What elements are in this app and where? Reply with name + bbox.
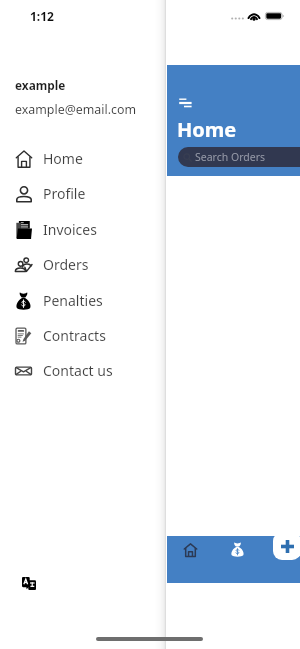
button[interactable]: Contact us <box>0 353 166 388</box>
staticText: Profile <box>43 184 86 203</box>
button[interactable]: Orders <box>0 247 166 282</box>
staticText: example@email.com <box>15 101 137 118</box>
button[interactable]: Penalties <box>0 283 166 318</box>
button[interactable]: Home <box>184 543 197 557</box>
staticText: Home <box>43 149 83 168</box>
button[interactable]: Invoices <box>0 212 166 247</box>
button[interactable]: Open navigation menu <box>178 97 193 109</box>
button[interactable]: Penalties <box>231 542 244 557</box>
button[interactable]: Profile <box>0 176 166 211</box>
staticText: Contracts <box>43 326 106 345</box>
staticText: Invoices <box>43 220 97 239</box>
staticText: Home <box>177 116 237 143</box>
staticText: example <box>15 77 66 93</box>
button[interactable]: Translate <box>22 577 36 590</box>
button[interactable]: Search Orders <box>178 147 300 167</box>
button[interactable]: Add <box>273 532 300 560</box>
staticText: Penalties <box>43 291 103 310</box>
button[interactable]: Contracts <box>0 318 166 353</box>
staticText: Contact us <box>43 361 113 380</box>
staticText: Orders <box>43 255 89 274</box>
staticText: 1:12 <box>30 8 54 24</box>
button[interactable]: Home <box>0 141 166 176</box>
staticText: Search Orders <box>195 150 266 164</box>
